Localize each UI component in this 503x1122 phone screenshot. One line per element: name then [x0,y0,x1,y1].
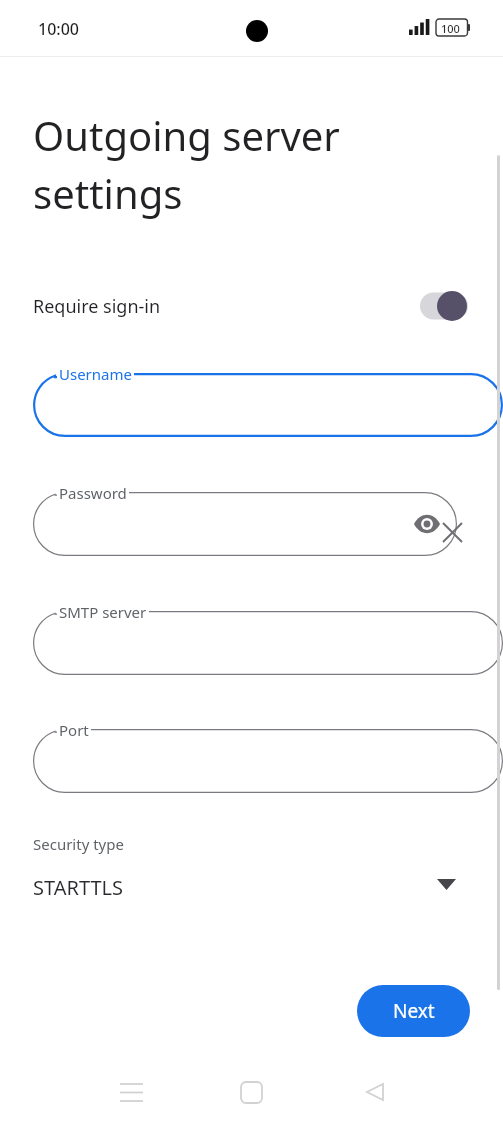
button[interactable]: Home [221,1062,281,1122]
button[interactable]: Back [345,1062,405,1122]
staticText: SMTP server [59,602,147,622]
button[interactable]: Recents [101,1062,161,1122]
staticText: Port [59,720,89,740]
button[interactable]: Clear password [440,520,465,545]
button[interactable]: SMTP server [33,611,503,675]
button[interactable]: Require sign-in [0,278,503,334]
staticText: 100 [441,21,460,36]
button[interactable]: Password [33,492,457,556]
button[interactable]: Security type [0,822,503,922]
staticText: Username [59,364,132,384]
staticText: Next [393,998,435,1024]
button[interactable]: Username [33,373,503,437]
button[interactable]: Show password [414,515,440,533]
button[interactable]: Next [357,985,470,1037]
staticText: Outgoing server settings [33,108,453,221]
button[interactable]: Port [33,729,503,793]
staticText: 10:00 [38,18,79,40]
staticText: Security type [33,834,124,854]
staticText: Password [59,483,127,503]
staticText: Require sign-in [33,294,161,319]
staticText: STARTTLS [33,874,124,901]
